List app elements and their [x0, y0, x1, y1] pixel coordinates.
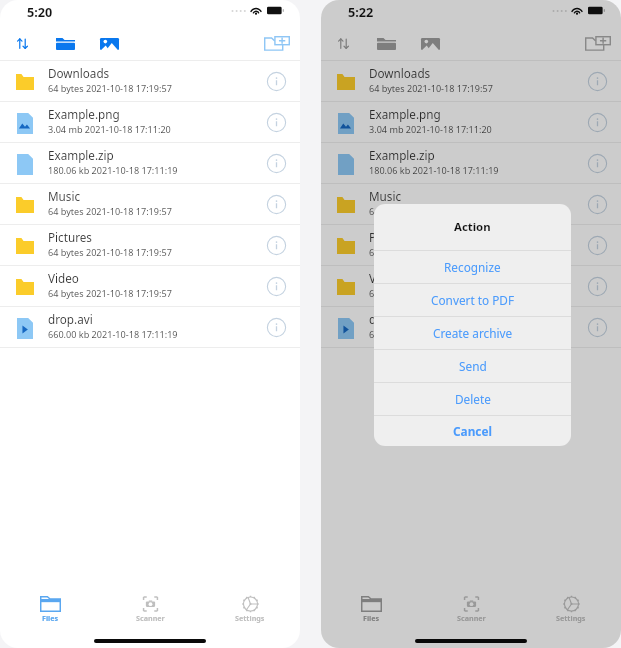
- button[interactable]: Downloads: [321, 61, 621, 102]
- staticText: 5:22: [348, 3, 374, 20]
- staticText: 64 bytes 2021-10-18 17:19:57: [369, 246, 493, 258]
- staticText: 660.00 kb 2021-10-18 17:11:19: [48, 328, 178, 340]
- staticText: Pictures: [369, 229, 413, 245]
- staticText: 180.06 kb 2021-10-18 17:11:19: [48, 164, 178, 176]
- button[interactable]: Sort: [330, 27, 356, 60]
- button[interactable]: Info: [588, 236, 607, 255]
- button[interactable]: Folders: [52, 27, 78, 60]
- staticText: Scanner: [136, 613, 165, 623]
- staticText: 64 bytes 2021-10-18 17:19:57: [48, 287, 172, 299]
- staticText: Downloads: [369, 65, 431, 81]
- staticText: Music: [369, 188, 402, 204]
- button[interactable]: Info: [267, 154, 286, 173]
- button[interactable]: Info: [588, 154, 607, 173]
- staticText: Music: [48, 188, 81, 204]
- button[interactable]: Example.zip: [321, 143, 621, 184]
- button[interactable]: Folders: [373, 27, 399, 60]
- button[interactable]: Example.png: [0, 102, 300, 143]
- staticText: Action: [454, 219, 491, 235]
- staticText: Files: [42, 613, 59, 623]
- button[interactable]: Info: [588, 113, 607, 132]
- button[interactable]: Scanner: [421, 595, 521, 628]
- button[interactable]: Settings: [521, 595, 621, 628]
- staticText: 64 bytes 2021-10-18 17:19:57: [369, 287, 493, 299]
- staticText: 64 bytes 2021-10-18 17:19:57: [369, 205, 493, 217]
- staticText: Settings: [556, 613, 586, 623]
- button[interactable]: Create archive: [374, 317, 571, 349]
- button[interactable]: Pictures: [0, 225, 300, 266]
- staticText: drop.avi: [369, 311, 414, 327]
- staticText: Video: [48, 270, 79, 286]
- button[interactable]: Music: [0, 184, 300, 225]
- button[interactable]: Music: [321, 184, 621, 225]
- button[interactable]: Send: [374, 350, 571, 382]
- staticText: Pictures: [48, 229, 92, 245]
- button[interactable]: New folder: [585, 27, 611, 60]
- staticText: Video: [369, 270, 400, 286]
- button[interactable]: Video: [0, 266, 300, 307]
- staticText: Cancel: [453, 423, 492, 439]
- staticText: 64 bytes 2021-10-18 17:19:57: [48, 246, 172, 258]
- button[interactable]: Info: [588, 318, 607, 337]
- staticText: Settings: [235, 613, 265, 623]
- staticText: Downloads: [48, 65, 110, 81]
- button[interactable]: Delete: [374, 383, 571, 415]
- button[interactable]: Info: [267, 113, 286, 132]
- staticText: Send: [459, 358, 487, 374]
- staticText: Create archive: [433, 325, 513, 341]
- staticText: Example.png: [48, 106, 120, 122]
- staticText: Example.zip: [369, 147, 435, 163]
- staticText: Scanner: [457, 613, 486, 623]
- button[interactable]: Cancel: [374, 416, 571, 446]
- button[interactable]: Convert to PDF: [374, 284, 571, 316]
- button[interactable]: Scanner: [100, 595, 200, 628]
- staticText: drop.avi: [48, 311, 93, 327]
- staticText: 3.04 mb 2021-10-18 17:11:20: [369, 123, 492, 135]
- button[interactable]: Sort: [9, 27, 35, 60]
- button[interactable]: Photos: [417, 27, 443, 60]
- button[interactable]: Info: [588, 277, 607, 296]
- staticText: Delete: [455, 391, 491, 407]
- button[interactable]: Info: [588, 195, 607, 214]
- button[interactable]: Files: [321, 595, 421, 628]
- button[interactable]: Info: [267, 318, 286, 337]
- staticText: 180.06 kb 2021-10-18 17:11:19: [369, 164, 499, 176]
- button[interactable]: Info: [267, 277, 286, 296]
- button[interactable]: Example.png: [321, 102, 621, 143]
- staticText: Files: [363, 613, 380, 623]
- staticText: 64 bytes 2021-10-18 17:19:57: [369, 82, 493, 94]
- staticText: 5:20: [27, 3, 53, 20]
- staticText: 660.00 kb 2021-10-18 17:11:19: [369, 328, 499, 340]
- button[interactable]: drop.avi: [0, 307, 300, 348]
- button[interactable]: Downloads: [0, 61, 300, 102]
- staticText: Example.png: [369, 106, 441, 122]
- button[interactable]: Photos: [96, 27, 122, 60]
- staticText: Example.zip: [48, 147, 114, 163]
- staticText: Convert to PDF: [431, 292, 515, 308]
- button[interactable]: Info: [267, 72, 286, 91]
- button[interactable]: New folder: [264, 27, 290, 60]
- button[interactable]: Info: [267, 195, 286, 214]
- staticText: Recognize: [444, 259, 501, 275]
- staticText: 3.04 mb 2021-10-18 17:11:20: [48, 123, 171, 135]
- button[interactable]: Pictures: [321, 225, 621, 266]
- button[interactable]: Video: [321, 266, 621, 307]
- button[interactable]: drop.avi: [321, 307, 621, 348]
- button[interactable]: Info: [588, 72, 607, 91]
- button[interactable]: Settings: [200, 595, 300, 628]
- button[interactable]: Info: [267, 236, 286, 255]
- button[interactable]: Recognize: [374, 251, 571, 283]
- button[interactable]: Files: [0, 595, 100, 628]
- staticText: 64 bytes 2021-10-18 17:19:57: [48, 82, 172, 94]
- button[interactable]: Example.zip: [0, 143, 300, 184]
- staticText: 64 bytes 2021-10-18 17:19:57: [48, 205, 172, 217]
